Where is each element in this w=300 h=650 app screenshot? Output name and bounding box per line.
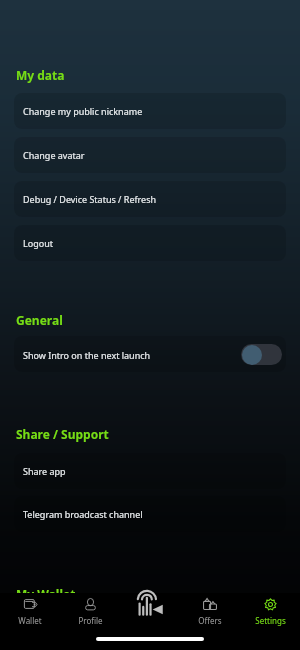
staticText: Share / Support xyxy=(16,426,109,442)
button[interactable]: Settings xyxy=(240,598,300,626)
button[interactable]: Logout xyxy=(14,225,286,261)
button[interactable]: Share app xyxy=(14,453,286,489)
button[interactable]: Profile xyxy=(60,598,120,626)
staticText: Profile xyxy=(78,615,103,626)
staticText: Change my public nickname xyxy=(23,105,143,117)
button[interactable]: Debug / Device Status / Refresh xyxy=(14,181,286,217)
staticText: Telegram broadcast channel xyxy=(23,508,143,520)
button[interactable]: Scan xyxy=(137,590,163,616)
staticText: Change avatar xyxy=(23,149,85,161)
staticText: Show Intro on the next launch xyxy=(23,349,151,361)
button[interactable]: Wallet xyxy=(0,598,60,626)
staticText: Share app xyxy=(23,465,66,477)
button[interactable]: Change avatar xyxy=(14,137,286,173)
staticText: General xyxy=(16,312,63,328)
button[interactable]: Offers xyxy=(180,598,240,626)
staticText: My Wallet xyxy=(16,586,76,602)
staticText: Logout xyxy=(23,237,53,249)
staticText: Debug / Device Status / Refresh xyxy=(23,193,157,205)
staticText: My data xyxy=(16,67,65,83)
staticText: Wallet xyxy=(18,615,42,626)
button[interactable]: Telegram broadcast channel xyxy=(14,496,286,532)
staticText: Offers xyxy=(198,615,222,626)
staticText: Settings xyxy=(255,615,286,626)
button[interactable]: Show Intro on the next launch xyxy=(14,336,286,372)
button[interactable]: Change my public nickname xyxy=(14,93,286,129)
